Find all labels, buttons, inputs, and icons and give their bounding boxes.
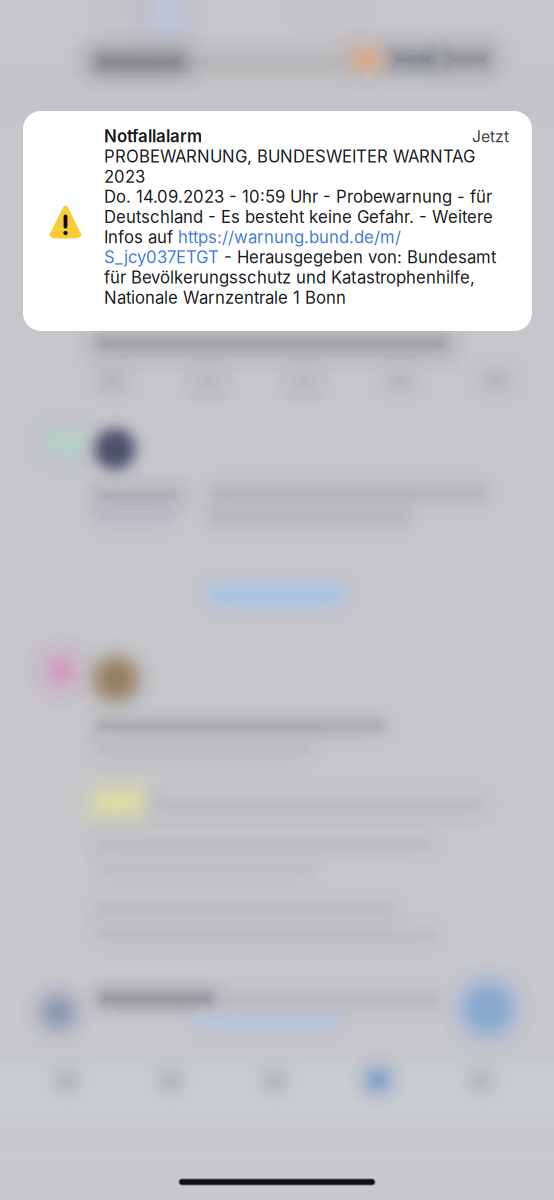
button[interactable]: Notfallalarm [23, 111, 532, 331]
staticText: Notfallalarm [104, 126, 202, 146]
staticText: Jetzt [472, 127, 509, 146]
staticText: PROBEWARNUNG, BUNDESWEITER WARNTAG 2023 [104, 146, 475, 187]
staticText: Do. 14.09.2023 - 10:59 Uhr - Probewarnun… [104, 187, 496, 308]
